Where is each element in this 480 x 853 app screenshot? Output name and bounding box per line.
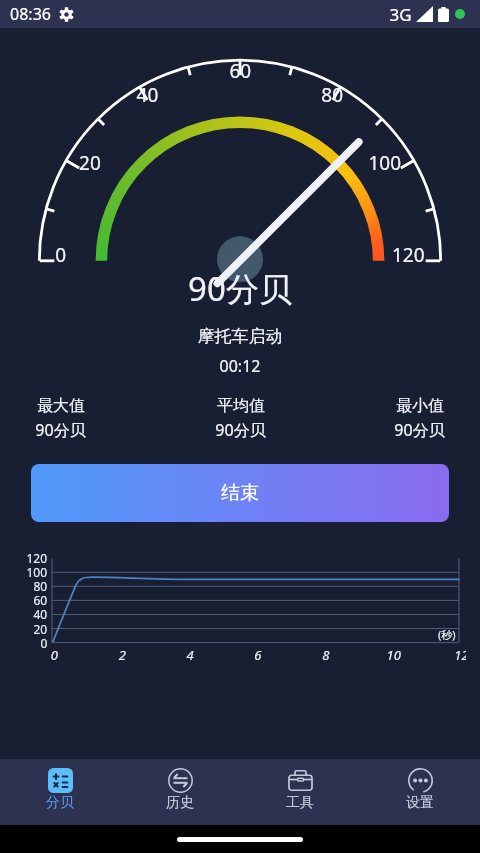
staticText: 历史	[166, 794, 194, 812]
button[interactable]: 设置	[360, 759, 480, 821]
button[interactable]: 分贝	[0, 759, 120, 821]
staticText: 工具	[286, 794, 314, 812]
staticText: 分贝	[46, 794, 74, 812]
staticText: 平均值	[217, 396, 265, 416]
staticText: 90分贝	[0, 266, 480, 311]
staticText: 设置	[406, 794, 434, 812]
button[interactable]: Settings	[59, 7, 74, 22]
staticText: 最大值	[37, 396, 85, 416]
staticText: 摩托车启动	[0, 326, 480, 347]
staticText: 最小值	[396, 396, 444, 416]
staticText: 00:12	[0, 355, 480, 377]
button[interactable]: 工具	[240, 759, 360, 821]
staticText: 3G	[389, 3, 412, 26]
staticText: 结束	[221, 481, 259, 505]
button[interactable]: 历史	[120, 759, 240, 821]
staticText: 90分贝	[215, 419, 266, 441]
staticText: 90分贝	[35, 419, 86, 441]
staticText: 90分贝	[394, 419, 445, 441]
button[interactable]: 结束	[31, 464, 449, 522]
staticText: 08:36	[10, 3, 51, 25]
